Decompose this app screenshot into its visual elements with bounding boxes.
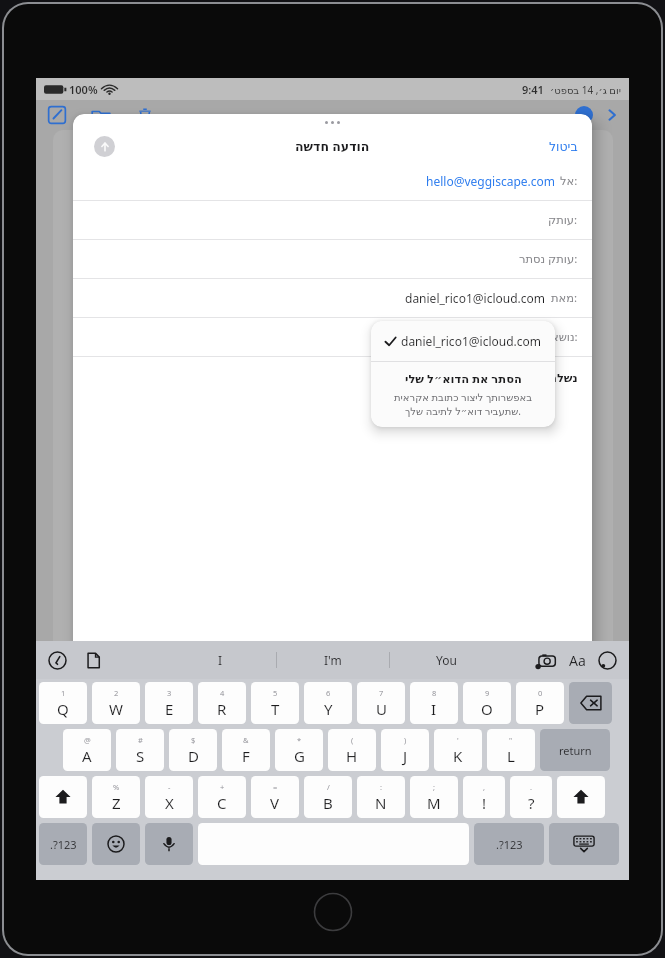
staticText: ' [457, 735, 459, 745]
button[interactable]: " [487, 729, 535, 771]
staticText: F [242, 746, 250, 766]
staticText: + [220, 782, 225, 792]
staticText: Q [57, 699, 69, 719]
staticText: ביטול [549, 139, 578, 154]
staticText: C [217, 793, 227, 813]
staticText: ) [404, 735, 407, 745]
staticText: נשלח [549, 371, 578, 384]
button[interactable]: Next [603, 106, 621, 124]
button[interactable]: ביטול [549, 139, 578, 154]
button[interactable]: ' [434, 729, 482, 771]
staticText: P [535, 699, 545, 719]
button[interactable]: .?123 [474, 823, 544, 865]
button[interactable]: הסתר את הדוא״ל שלי [383, 371, 543, 418]
other: Shift [572, 788, 590, 806]
staticText: 1 [61, 688, 66, 698]
staticText: 2 [114, 688, 119, 698]
button[interactable]: % [92, 776, 140, 818]
button[interactable]: You [390, 645, 502, 675]
button[interactable]: Emoji [92, 823, 140, 865]
button[interactable]: * [275, 729, 323, 771]
other: Dictate [161, 836, 177, 852]
button[interactable]: = [251, 776, 299, 818]
button[interactable]: 0 [516, 682, 564, 724]
button[interactable]: נושא: [73, 318, 592, 356]
button[interactable]: Home [313, 892, 353, 932]
staticText: A [82, 746, 92, 766]
button[interactable]: ) [381, 729, 429, 771]
staticText: O [481, 699, 493, 719]
button[interactable]: - [145, 776, 193, 818]
button[interactable]: Stickers [598, 651, 617, 670]
button[interactable]: 1 [39, 682, 87, 724]
button[interactable]: עותק: [73, 201, 592, 239]
staticText: H [346, 746, 358, 766]
staticText: E [165, 699, 174, 719]
button[interactable]: Aa [569, 651, 586, 670]
staticText: J [403, 746, 408, 766]
button[interactable]: Send [94, 136, 115, 157]
button[interactable]: hello@veggiscape.com [73, 162, 592, 200]
button[interactable]: 3 [145, 682, 193, 724]
staticText: , [483, 782, 486, 792]
staticText: ; [433, 782, 436, 792]
button[interactable]: 5 [251, 682, 299, 724]
button[interactable]: 2 [92, 682, 140, 724]
button[interactable]: Folder [90, 104, 112, 126]
button[interactable]: Shift [557, 776, 605, 818]
button[interactable]: I [164, 645, 276, 675]
button[interactable]: Delete [134, 104, 156, 126]
button[interactable]: Camera [536, 652, 557, 669]
button[interactable]: # [116, 729, 164, 771]
button[interactable]: עותק נסתר: [73, 240, 592, 278]
other: Hide keyboard [572, 835, 596, 853]
button[interactable]: + [198, 776, 246, 818]
button[interactable]: ( [328, 729, 376, 771]
button[interactable]: daniel_rico1@icloud.com [73, 279, 592, 317]
staticText: 6 [326, 688, 331, 698]
staticText: Z [112, 793, 121, 813]
other: Emoji [107, 835, 125, 853]
button[interactable]: I'm [277, 645, 389, 675]
button[interactable]: Compose [46, 104, 68, 126]
staticText: T [271, 699, 280, 719]
button[interactable]: daniel_rico1@icloud.com [371, 321, 555, 361]
button[interactable]: Markup [48, 651, 67, 670]
button[interactable]: 6 [304, 682, 352, 724]
staticText: V [270, 793, 280, 813]
button[interactable]: $ [169, 729, 217, 771]
staticText: 8 [432, 688, 437, 698]
staticText: & [243, 735, 249, 745]
button[interactable]: Hide keyboard [549, 823, 619, 865]
staticText: G [294, 746, 305, 766]
button[interactable]: , [463, 776, 505, 818]
staticText: נושא: [551, 329, 578, 345]
button[interactable]: Document [85, 652, 102, 669]
button[interactable]: .?123 [39, 823, 87, 865]
button[interactable]: 8 [410, 682, 458, 724]
button[interactable] [569, 682, 612, 724]
button[interactable]: : [357, 776, 405, 818]
button[interactable]: 7 [357, 682, 405, 724]
button[interactable]: Shift [39, 776, 87, 818]
button[interactable]: / [304, 776, 352, 818]
staticText: מאת: [551, 290, 578, 306]
staticText: W [109, 699, 123, 719]
button[interactable]: & [222, 729, 270, 771]
button[interactable]: 4 [198, 682, 246, 724]
staticText: - [168, 782, 171, 792]
staticText: I'm [324, 652, 342, 668]
button[interactable]: return [540, 729, 610, 771]
button[interactable]: Dictate [145, 823, 193, 865]
staticText: daniel_rico1@icloud.com [401, 333, 542, 349]
staticText: 100% [69, 82, 98, 97]
staticText: הודעה חדשה [295, 138, 370, 155]
button[interactable]: @ [63, 729, 111, 771]
button[interactable]: Account [575, 106, 593, 124]
button[interactable]: . [510, 776, 552, 818]
button[interactable]: 9 [463, 682, 511, 724]
button[interactable]: ; [410, 776, 458, 818]
staticText: N [375, 793, 387, 813]
staticText: . [530, 782, 533, 792]
